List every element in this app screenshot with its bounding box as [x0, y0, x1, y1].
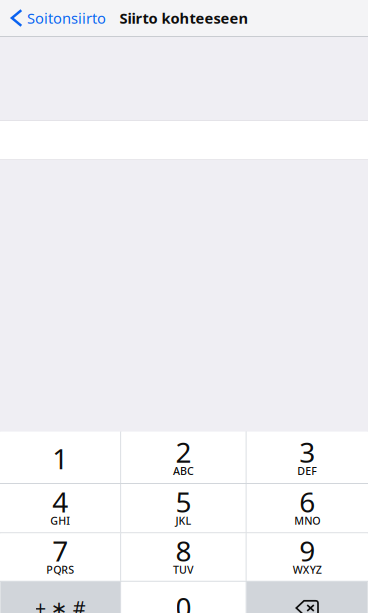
staticText: 4: [52, 483, 68, 520]
staticText: 5: [175, 483, 191, 520]
staticText: GHI: [50, 514, 70, 528]
staticText: WXYZ: [293, 562, 322, 577]
button[interactable]: 5: [121, 484, 246, 532]
button[interactable]: Delete: [247, 582, 368, 613]
button[interactable]: Soitonsiirto: [0, 0, 120, 36]
button[interactable]: 0: [121, 582, 246, 613]
staticText: TUV: [173, 562, 194, 577]
button[interactable]: 6: [247, 484, 368, 532]
staticText: ABC: [173, 464, 194, 478]
staticText: Siirto kohteeseen: [119, 8, 248, 28]
staticText: Soitonsiirto: [27, 8, 106, 28]
staticText: 2: [175, 433, 191, 470]
staticText: 1: [52, 440, 68, 477]
staticText: JKL: [175, 514, 191, 528]
staticText: 0: [175, 588, 191, 613]
button[interactable]: 2: [121, 432, 246, 483]
staticText: DEF: [297, 464, 317, 478]
button[interactable]: 1: [0, 432, 120, 483]
button[interactable]: 3: [247, 432, 368, 483]
button[interactable]: + ∗ #: [0, 582, 120, 613]
staticText: 7: [52, 532, 68, 569]
button[interactable]: 4: [0, 484, 120, 532]
button[interactable]: 7: [0, 533, 120, 581]
staticText: MNO: [294, 514, 320, 528]
staticText: 6: [299, 483, 315, 520]
staticText: 9: [299, 532, 315, 569]
button[interactable]: 9: [247, 533, 368, 581]
staticText: 3: [299, 433, 315, 470]
staticText: PQRS: [46, 562, 74, 577]
staticText: + ∗ #: [35, 594, 86, 613]
staticText: 8: [175, 532, 191, 569]
button[interactable]: 8: [121, 533, 246, 581]
